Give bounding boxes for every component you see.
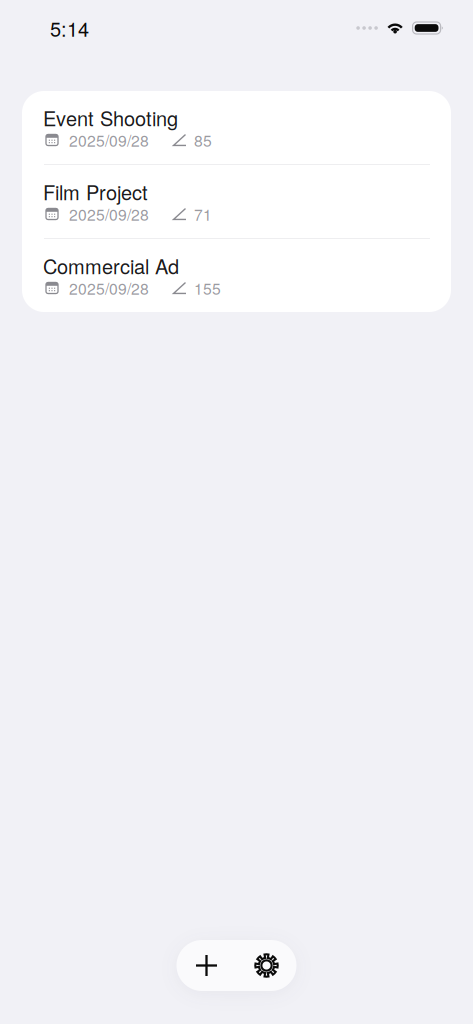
button[interactable]: Settings [236, 940, 296, 991]
staticText: 2025/09/28 [69, 203, 149, 225]
staticText: Commercial Ad [43, 251, 179, 280]
button[interactable]: Commercial Ad [22, 239, 451, 312]
button[interactable]: Add project [176, 940, 236, 991]
staticText: 2025/09/28 [69, 277, 149, 299]
button[interactable]: Film Project [22, 165, 451, 238]
staticText: 71 [194, 203, 212, 225]
staticText: 85 [194, 129, 212, 151]
staticText: 155 [194, 277, 221, 299]
staticText: Film Project [43, 177, 148, 206]
staticText: 2025/09/28 [69, 129, 149, 151]
staticText: Event Shooting [43, 103, 178, 132]
button[interactable]: Event Shooting [22, 91, 451, 164]
staticText: 5:14 [50, 14, 89, 42]
